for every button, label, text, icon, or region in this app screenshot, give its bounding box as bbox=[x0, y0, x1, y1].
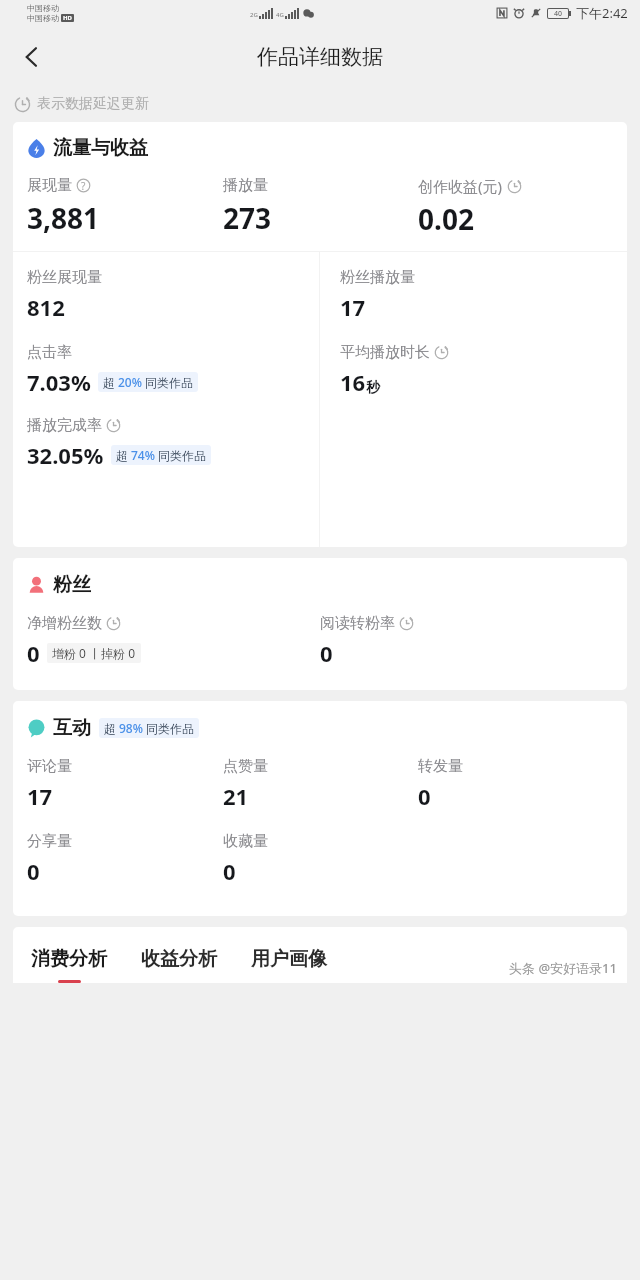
staticText: 点击率 bbox=[27, 343, 72, 362]
staticText: 中国移动 bbox=[27, 3, 59, 13]
staticText: 32.05% bbox=[27, 440, 104, 470]
staticText: 812 bbox=[27, 292, 65, 322]
staticText: 用户画像 bbox=[251, 947, 327, 971]
staticText: 头条 @安好语录11 bbox=[509, 959, 617, 977]
staticText: 中国移动 bbox=[27, 13, 59, 23]
staticText: 表示数据延迟更新 bbox=[37, 95, 149, 113]
staticText: 阅读转粉率 bbox=[320, 614, 395, 633]
staticText: 98% bbox=[119, 720, 143, 736]
staticText: 2G bbox=[250, 11, 258, 19]
staticText: 17 bbox=[340, 292, 366, 322]
staticText: 播放完成率 bbox=[27, 416, 102, 435]
staticText: 增粉 0 丨掉粉 0 bbox=[52, 645, 136, 661]
staticText: 分享量 bbox=[27, 832, 72, 851]
staticText: 平均播放时长 bbox=[340, 343, 430, 362]
staticText: 4G bbox=[276, 11, 284, 19]
button[interactable]: 返回 bbox=[8, 33, 56, 81]
staticText: 超 bbox=[104, 721, 116, 736]
staticText: 16 bbox=[340, 367, 366, 397]
staticText: 播放量 bbox=[223, 176, 268, 195]
staticText: 净增粉丝数 bbox=[27, 614, 102, 633]
staticText: 评论量 bbox=[27, 757, 72, 776]
staticText: 收藏量 bbox=[223, 832, 268, 851]
staticText: 0 bbox=[418, 781, 431, 811]
staticText: 同类作品 bbox=[158, 448, 206, 463]
staticText: 收益分析 bbox=[141, 947, 217, 971]
staticText: ? bbox=[81, 179, 86, 193]
staticText: 7.03% bbox=[27, 367, 91, 397]
staticText: 0.02 bbox=[418, 200, 474, 238]
button[interactable]: 消费分析 bbox=[27, 947, 111, 983]
staticText: 转发量 bbox=[418, 757, 463, 776]
staticText: 同类作品 bbox=[145, 375, 193, 390]
staticText: 74% bbox=[131, 447, 155, 463]
staticText: 超 bbox=[103, 375, 115, 390]
staticText: 互动 bbox=[53, 716, 91, 740]
staticText: 0 bbox=[27, 856, 40, 886]
staticText: 21 bbox=[223, 781, 249, 811]
staticText: 下午2:42 bbox=[576, 4, 628, 22]
staticText: 粉丝展现量 bbox=[27, 268, 102, 287]
staticText: 创作收益(元) bbox=[418, 176, 503, 196]
staticText: 粉丝 bbox=[53, 573, 91, 597]
staticText: 40 bbox=[554, 9, 563, 18]
staticText: 273 bbox=[223, 199, 272, 237]
staticText: 超 bbox=[116, 448, 128, 463]
staticText: 展现量 bbox=[27, 176, 72, 195]
staticText: 粉丝播放量 bbox=[340, 268, 415, 287]
staticText: 3,881 bbox=[27, 199, 100, 237]
staticText: 0 bbox=[223, 856, 236, 886]
staticText: 秒 bbox=[366, 379, 380, 397]
staticText: 作品详细数据 bbox=[257, 44, 383, 70]
staticText: HD bbox=[63, 14, 72, 22]
staticText: 0 bbox=[27, 638, 40, 668]
staticText: 20% bbox=[118, 374, 142, 390]
button[interactable]: 用户画像 bbox=[247, 947, 331, 983]
staticText: 流量与收益 bbox=[53, 136, 148, 160]
button[interactable]: 收益分析 bbox=[137, 947, 221, 983]
staticText: 消费分析 bbox=[31, 947, 107, 971]
staticText: 17 bbox=[27, 781, 53, 811]
staticText: 同类作品 bbox=[146, 721, 194, 736]
staticText: 点赞量 bbox=[223, 757, 268, 776]
staticText: 0 bbox=[320, 638, 333, 668]
